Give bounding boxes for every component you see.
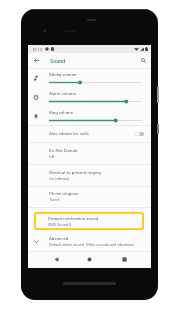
staticText: Off — [49, 154, 55, 159]
button[interactable]: Also vibrate for calls — [28, 125, 151, 142]
staticText: Default alarm sound, Other sounds and vi… — [49, 242, 135, 247]
staticText: Shortcut to prevent ringing — [49, 170, 101, 175]
staticText: Do Not Disturb — [49, 148, 78, 153]
button[interactable]: Back — [48, 251, 64, 268]
button[interactable]: Alarm volume — [28, 87, 151, 106]
staticText: Tone5 — [49, 197, 60, 202]
button[interactable]: Search — [138, 55, 149, 66]
staticText: On (vibrate) — [49, 176, 70, 181]
button[interactable]: Home — [81, 251, 97, 268]
button[interactable]: Recents — [116, 251, 132, 268]
staticText: Advanced — [49, 236, 69, 241]
button[interactable]: Ring volume — [28, 106, 151, 125]
staticText: Default notification sound — [48, 216, 99, 221]
staticText: Media volume — [49, 72, 77, 77]
button[interactable]: Phone ringtone — [28, 186, 151, 207]
button[interactable]: Back — [31, 55, 42, 66]
staticText: 10:13 — [32, 47, 42, 52]
button[interactable]: Default notification sound — [34, 212, 144, 230]
staticText: Also vibrate for calls — [49, 131, 89, 136]
staticText: Sound — [50, 58, 66, 64]
button[interactable]: Shortcut to prevent ringing — [28, 164, 151, 186]
button[interactable]: Media volume — [28, 68, 151, 87]
staticText: SMS Sound 6 — [48, 222, 72, 227]
staticText: Alarm volume — [49, 91, 77, 96]
button[interactable]: Advanced — [28, 233, 151, 251]
staticText: Phone ringtone — [49, 191, 79, 196]
staticText: Ring volume — [49, 110, 74, 115]
button[interactable]: Do Not Disturb — [28, 142, 151, 164]
